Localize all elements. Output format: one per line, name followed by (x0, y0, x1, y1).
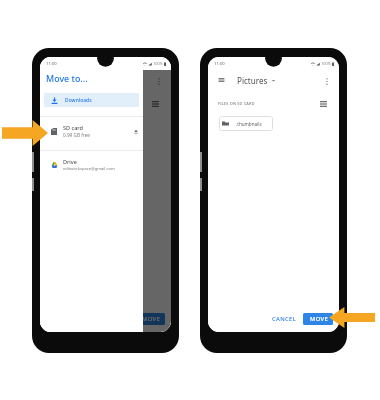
button[interactable]: .thumbnails (219, 116, 273, 131)
button[interactable]: View options (152, 101, 159, 107)
staticText: 11:00 (214, 61, 225, 67)
staticText: 0.99 GB free (63, 132, 90, 138)
staticText: SD card (63, 124, 83, 131)
button[interactable]: MOVE (135, 313, 165, 325)
staticText: Downloads (65, 97, 92, 104)
button[interactable]: More options (326, 78, 328, 85)
button[interactable]: Menu (218, 77, 225, 83)
staticText: FILES ON SD CARD (218, 101, 255, 106)
staticText: 100% (321, 61, 331, 66)
staticText: CANCEL (272, 315, 297, 323)
staticText: MOVE (142, 315, 161, 323)
button[interactable]: Downloads (44, 93, 139, 107)
staticText: Move to... (46, 72, 88, 84)
staticText: 100% (153, 61, 163, 66)
staticText: Drive (63, 158, 77, 165)
staticText: editworkspace@gmail.com (63, 166, 115, 172)
staticText: MOVE (310, 315, 329, 323)
button[interactable]: .thumbnails (51, 116, 105, 131)
button[interactable]: Drive (40, 151, 143, 184)
staticText: .thumbnails (236, 121, 262, 127)
staticText: FILES ON SD CARD (50, 101, 87, 106)
button[interactable]: View options (320, 101, 327, 107)
staticText: 11:00 (46, 61, 57, 67)
button[interactable]: MOVE (303, 313, 333, 325)
staticText: .thumbnails (68, 121, 94, 127)
staticText: Pictures (237, 75, 268, 86)
button[interactable]: SD card (40, 117, 143, 150)
button[interactable]: CANCEL (266, 313, 301, 325)
staticText: Pictures (69, 75, 100, 86)
button[interactable]: More options (158, 78, 160, 85)
button[interactable]: Menu (50, 77, 57, 83)
